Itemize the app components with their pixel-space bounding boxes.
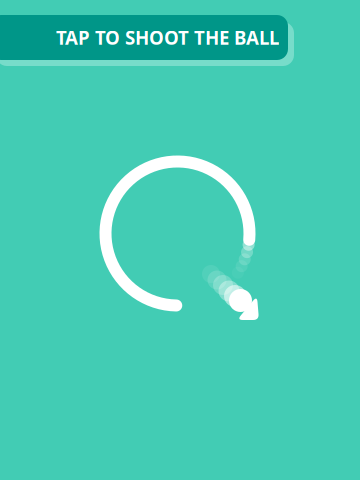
button[interactable]: TAP TO SHOOT THE BALL: [0, 15, 292, 66]
staticText: TAP TO SHOOT THE BALL: [56, 25, 279, 50]
button[interactable]: Shoot the ball: [0, 0, 360, 480]
